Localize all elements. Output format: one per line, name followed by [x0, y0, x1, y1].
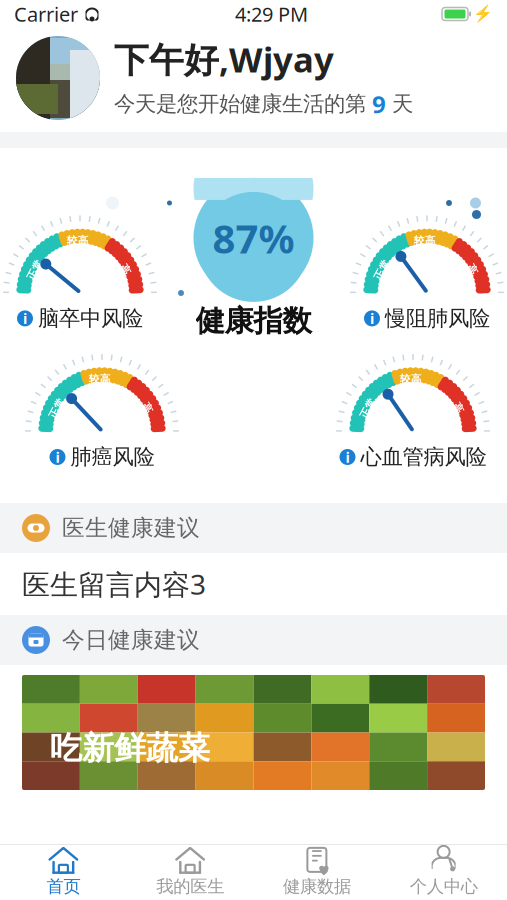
button[interactable]: 个人中心 [380, 845, 507, 899]
button[interactable]: 吃新鲜蔬菜 [0, 665, 507, 790]
staticText: i [23, 309, 27, 328]
button[interactable]: 健康数据 [253, 845, 380, 899]
staticText: i [55, 447, 59, 467]
staticText: 正常 [46, 402, 68, 415]
staticText: 正常 [24, 263, 46, 276]
staticText: 较高 [89, 373, 111, 386]
staticText: 脑卒中风险 [38, 305, 143, 331]
staticText: 医生健康建议 [62, 514, 200, 542]
staticText: 慢阻肺风险 [385, 305, 490, 331]
button[interactable]: 首页 [0, 845, 127, 899]
button[interactable]: 正常 [6, 214, 154, 331]
staticText: 我的医生 [156, 876, 224, 897]
staticText: 今天是您开始健康生活的第 [114, 91, 372, 117]
staticText: 4:29 PM [235, 1, 308, 27]
staticText: 正常 [371, 263, 393, 276]
button[interactable]: 医生留言内容3 [0, 553, 507, 615]
staticText: 首页 [46, 876, 80, 897]
staticText: 健康指数 [195, 303, 311, 339]
staticText: 较高 [414, 234, 436, 247]
staticText: ⚡ [473, 5, 493, 23]
staticText: 高 [119, 263, 130, 276]
button[interactable]: 医生健康建议 [0, 503, 507, 553]
button[interactable]: 正常 [339, 353, 487, 470]
staticText: 肺癌风险 [70, 444, 154, 470]
staticText: 高 [452, 402, 463, 415]
staticText: 87% [212, 211, 294, 264]
staticText: Carrier [14, 1, 78, 27]
staticText: 高 [141, 402, 152, 415]
button[interactable]: 今日健康建议 [0, 615, 507, 665]
staticText: 健康数据 [283, 876, 351, 897]
staticText: 9 [372, 88, 386, 120]
staticText: 个人中心 [410, 876, 478, 897]
staticText: 医生留言内容3 [22, 565, 206, 603]
staticText: 心血管病风险 [360, 444, 486, 470]
staticText: 较高 [400, 373, 422, 386]
button[interactable]: 正常 [353, 214, 501, 331]
staticText: 下午好,Wjyay [114, 36, 334, 82]
staticText: 今日健康建议 [62, 626, 200, 654]
staticText: 天 [386, 91, 413, 117]
staticText: 较高 [67, 234, 89, 247]
staticText: 吃新鲜蔬菜 [50, 729, 210, 768]
staticText: i [345, 447, 349, 467]
staticText: i [370, 309, 374, 328]
staticText: 正常 [357, 402, 379, 415]
button[interactable]: 我的医生 [127, 845, 254, 899]
staticText: 高 [466, 263, 477, 276]
button[interactable]: 正常 [28, 353, 176, 470]
